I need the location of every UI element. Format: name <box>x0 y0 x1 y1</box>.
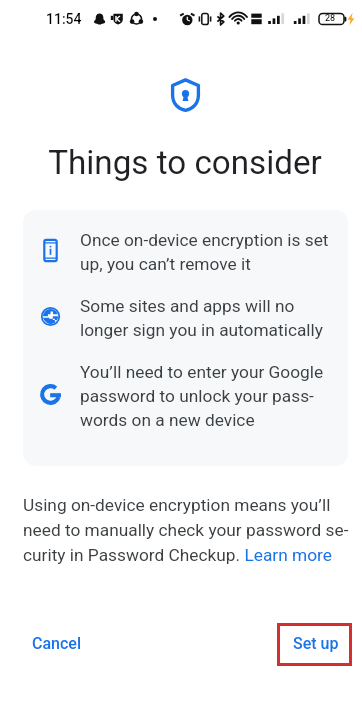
staticText: Using on-device encryption means you’ll … <box>23 495 353 565</box>
staticText: Once on-device encryption is set up, you… <box>80 230 329 274</box>
staticText: Some sites and apps will no longer sign … <box>80 296 323 340</box>
button[interactable]: Set up <box>281 623 351 664</box>
staticText: 28 <box>325 13 336 24</box>
staticText: Things to consider <box>14 143 356 182</box>
button[interactable]: Cancel <box>20 623 93 664</box>
staticText: You’ll need to enter your Google passwor… <box>80 362 324 430</box>
staticText: Set up <box>293 634 339 653</box>
staticText: Cancel <box>32 634 81 653</box>
staticText: 11:54 <box>46 11 82 27</box>
